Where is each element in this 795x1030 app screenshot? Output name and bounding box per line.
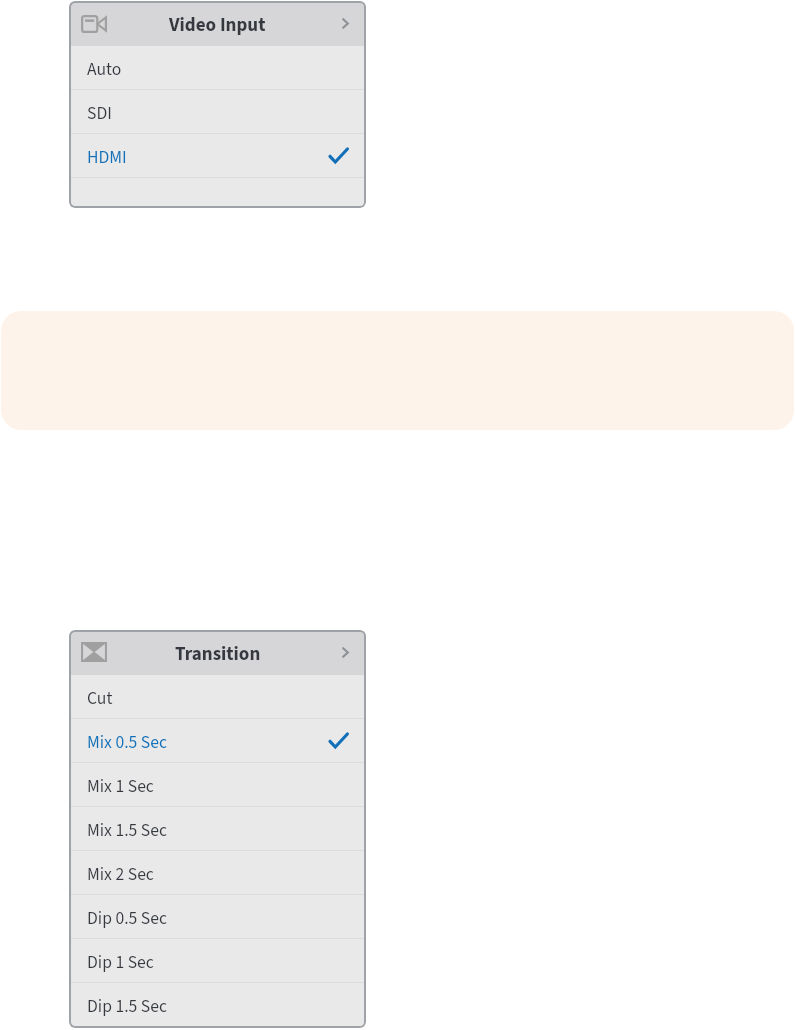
button[interactable]: HDMI bbox=[69, 134, 366, 177]
staticText: Mix 1.5 Sec bbox=[87, 818, 168, 843]
staticText: Dip 1 Sec bbox=[87, 950, 154, 975]
button[interactable]: SDI bbox=[69, 90, 366, 133]
button[interactable]: Mix 0.5 Sec bbox=[69, 719, 366, 762]
button[interactable]: Dip 0.5 Sec bbox=[69, 895, 366, 938]
staticText: Video Input bbox=[169, 12, 266, 39]
staticText: Auto bbox=[87, 57, 122, 82]
button[interactable]: Dip 1.5 Sec bbox=[69, 983, 366, 1026]
button[interactable]: Transition settings bbox=[69, 630, 366, 675]
button[interactable]: Mix 2 Sec bbox=[69, 851, 366, 894]
button[interactable]: Mix 1 Sec bbox=[69, 763, 366, 806]
staticText: Mix 0.5 Sec bbox=[87, 730, 168, 755]
button[interactable]: Auto bbox=[69, 46, 366, 89]
button[interactable]: Dip 1 Sec bbox=[69, 939, 366, 982]
staticText: Mix 2 Sec bbox=[87, 862, 154, 887]
staticText: Dip 0.5 Sec bbox=[87, 906, 167, 931]
staticText: SDI bbox=[87, 101, 112, 126]
staticText: Dip 1.5 Sec bbox=[87, 994, 167, 1019]
staticText: HDMI bbox=[87, 145, 127, 170]
staticText: Cut bbox=[87, 686, 113, 711]
button[interactable]: Mix 1.5 Sec bbox=[69, 807, 366, 850]
button[interactable]: Video Input settings bbox=[69, 1, 366, 46]
staticText: Transition bbox=[175, 641, 261, 668]
staticText: Mix 1 Sec bbox=[87, 774, 154, 799]
button[interactable]: Cut bbox=[69, 675, 366, 718]
